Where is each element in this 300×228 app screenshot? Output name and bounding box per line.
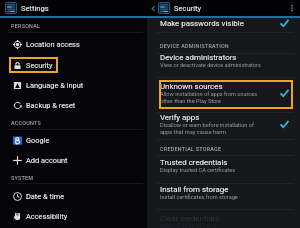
- button[interactable]: Security: [0, 55, 147, 75]
- button[interactable]: Location access: [0, 34, 147, 54]
- staticText: Install certificates from storage: [160, 194, 238, 201]
- button[interactable]: Add account: [0, 150, 147, 170]
- staticText: Display trusted CA certificates: [160, 167, 236, 174]
- button[interactable]: Clear credentials: [147, 212, 300, 228]
- button[interactable]: Unknown sources: [147, 80, 300, 108]
- staticText: Language & input: [26, 81, 84, 90]
- button[interactable]: Install from storage: [147, 183, 300, 211]
- staticText: Allow installation of apps from sources …: [160, 91, 258, 105]
- button[interactable]: Accessibility: [0, 206, 147, 226]
- staticText: Security: [174, 4, 202, 13]
- staticText: Unknown sources: [160, 82, 223, 91]
- staticText: Location access: [26, 40, 80, 49]
- button[interactable]: Verify apps: [147, 111, 300, 139]
- staticText: Clear credentials: [160, 214, 219, 223]
- staticText: Install from storage: [160, 185, 229, 194]
- staticText: CREDENTIAL STORAGE: [160, 146, 222, 152]
- staticText: View or deactivate device administrators: [160, 62, 261, 69]
- button[interactable]: Language & input: [0, 75, 147, 95]
- staticText: Settings: [21, 4, 49, 13]
- staticText: Google: [26, 136, 50, 145]
- button[interactable]: More options: [287, 3, 297, 13]
- staticText: Backup & reset: [26, 101, 76, 110]
- staticText: Verify apps: [160, 113, 200, 122]
- staticText: SYSTEM: [11, 175, 34, 181]
- staticText: Make passwords visible: [160, 19, 244, 28]
- button[interactable]: Make passwords visible: [147, 17, 300, 31]
- button[interactable]: Trusted credentials: [147, 156, 300, 184]
- staticText: PERSONAL: [11, 23, 41, 29]
- button[interactable]: Google: [0, 130, 147, 150]
- staticText: DEVICE ADMINISTRATION: [160, 43, 229, 49]
- staticText: Add account: [26, 156, 68, 165]
- staticText: ACCOUNTS: [11, 120, 42, 126]
- button[interactable]: Backup & reset: [0, 95, 147, 115]
- staticText: Accessibility: [26, 212, 68, 221]
- staticText: Security: [26, 61, 53, 70]
- button[interactable]: Date & time: [0, 186, 147, 206]
- button[interactable]: Device administrators: [147, 51, 300, 79]
- staticText: Date & time: [26, 192, 65, 201]
- button[interactable]: Settings: [0, 0, 147, 16]
- staticText: Trusted credentials: [160, 158, 228, 167]
- button[interactable]: Security: [158, 2, 202, 14]
- staticText: Device administrators: [160, 53, 237, 62]
- staticText: Disallow or warn before installation of …: [160, 122, 254, 136]
- button[interactable]: Navigate up: [148, 3, 158, 13]
